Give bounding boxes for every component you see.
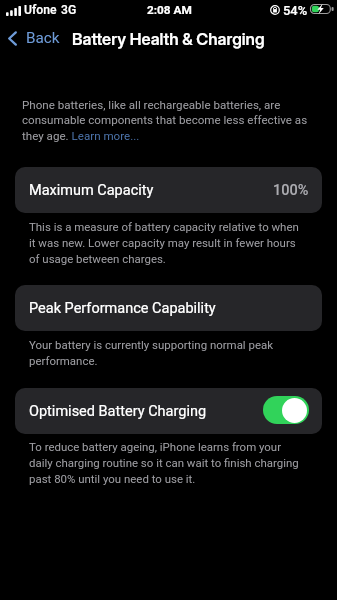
staticText: 2:08 AM <box>147 3 192 17</box>
staticText: Back <box>26 29 60 47</box>
button[interactable]: Maximum Capacity <box>15 167 322 213</box>
button[interactable]: Peak Performance Capability <box>15 285 322 331</box>
staticText: 100% <box>273 182 309 199</box>
staticText: Ufone <box>24 3 57 17</box>
staticText: Your battery is currently supporting nor… <box>29 338 301 367</box>
staticText: 54% <box>283 3 308 18</box>
staticText: Phone batteries, like all rechargeable b… <box>22 98 314 143</box>
button[interactable]: Optimised Battery Charging, on <box>263 396 309 424</box>
staticText: Battery Health & Charging <box>72 29 265 49</box>
staticText: To reduce battery ageing, iPhone learns … <box>29 440 301 485</box>
staticText: 3G <box>61 3 77 17</box>
staticText: Peak Performance Capability <box>29 300 216 317</box>
staticText: This is a measure of battery capacity re… <box>29 220 301 265</box>
button[interactable]: Back <box>3 25 66 51</box>
button[interactable]: Optimised Battery Charging <box>15 388 322 434</box>
staticText: Maximum Capacity <box>29 182 154 199</box>
staticText: Optimised Battery Charging <box>29 403 207 420</box>
